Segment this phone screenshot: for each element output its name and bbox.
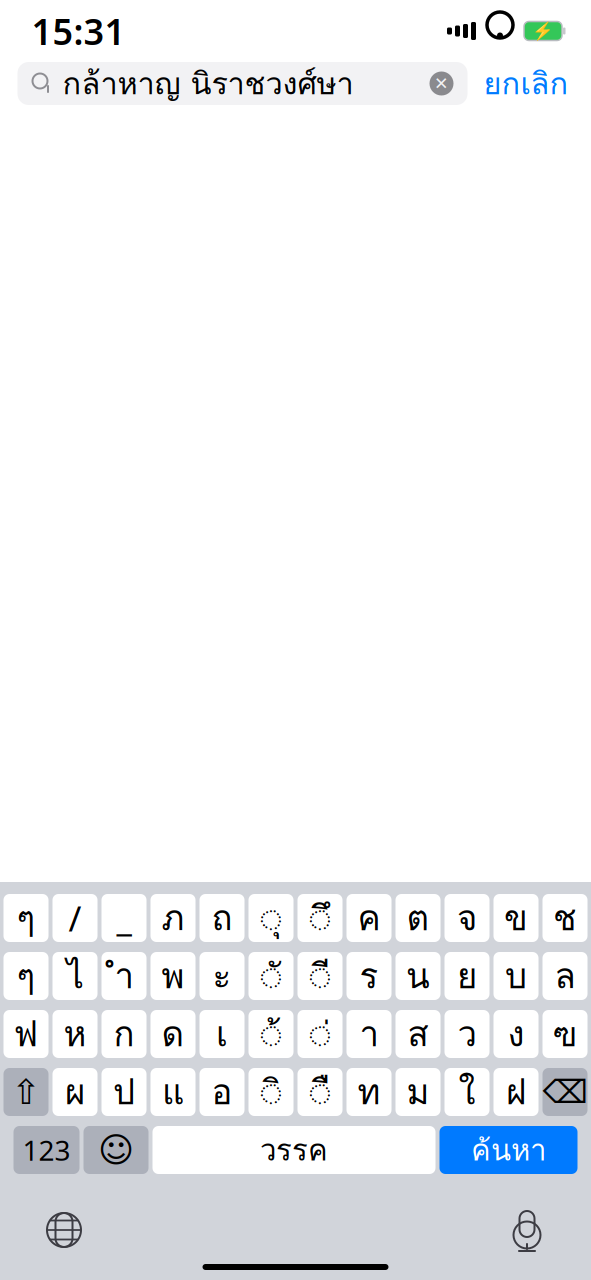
button[interactable]: ร	[346, 952, 391, 1000]
staticText: ☺	[98, 1130, 134, 1170]
staticText: ค้นหา	[471, 1127, 546, 1173]
button[interactable]: แ	[150, 1068, 195, 1116]
button[interactable]: ำ	[101, 952, 146, 1000]
staticText: ส	[407, 1007, 428, 1061]
button[interactable]: 123	[13, 1126, 79, 1174]
button[interactable]: ล	[542, 952, 587, 1000]
button[interactable]: วรรค	[152, 1126, 435, 1174]
button[interactable]: ต	[395, 894, 440, 942]
staticText: ค	[357, 891, 380, 945]
button[interactable]: ฃ	[542, 1010, 587, 1058]
staticText: ยกเลิก	[483, 60, 568, 107]
button[interactable]: กล้าหาญ นิราชวงศ์ษา	[17, 62, 467, 105]
staticText: ม	[406, 1065, 429, 1119]
staticText: ต	[406, 891, 429, 945]
staticText: ร	[359, 949, 378, 1003]
button[interactable]: ภ	[150, 894, 195, 942]
button[interactable]: ข	[493, 894, 538, 942]
staticText: ⚡	[532, 21, 554, 41]
button[interactable]: ท	[346, 1068, 391, 1116]
staticText: ด	[161, 1007, 184, 1061]
staticText: ฃ	[552, 1007, 577, 1061]
button[interactable]: ่	[297, 1010, 342, 1058]
button[interactable]: ย	[444, 952, 489, 1000]
button[interactable]: ี	[297, 952, 342, 1000]
button[interactable]: ด	[150, 1010, 195, 1058]
button[interactable]: ก	[101, 1010, 146, 1058]
button[interactable]: /	[52, 894, 97, 942]
staticText: น	[406, 949, 430, 1003]
button[interactable]: ใ	[444, 1068, 489, 1116]
button[interactable]: ะ	[199, 952, 244, 1000]
button[interactable]: Emoji keyboard	[83, 1126, 148, 1174]
button[interactable]: ค	[346, 894, 391, 942]
staticText: ฝ	[506, 1065, 526, 1119]
staticText: ภ	[161, 891, 184, 945]
button[interactable]: ส	[395, 1010, 440, 1058]
button[interactable]: ผ	[52, 1068, 97, 1116]
staticText: ช	[553, 891, 577, 945]
staticText: ื	[309, 1065, 330, 1119]
button[interactable]: _	[101, 894, 146, 942]
button[interactable]: ิ	[248, 1068, 293, 1116]
staticText: วรรค	[260, 1127, 328, 1173]
button[interactable]: ุ	[248, 894, 293, 942]
staticText: ผ	[65, 1065, 85, 1119]
staticText: ๆ	[16, 949, 35, 1003]
button[interactable]: Clear text	[426, 68, 456, 98]
staticText: ี	[309, 949, 330, 1003]
staticText: _	[116, 895, 131, 941]
staticText: ⌫	[542, 1074, 587, 1110]
staticText: อ	[211, 1065, 232, 1119]
staticText: ำ	[114, 949, 133, 1003]
staticText: ย	[457, 949, 477, 1003]
staticText: แ	[162, 1065, 184, 1119]
staticText: จ	[457, 891, 477, 945]
button[interactable]: ว	[444, 1010, 489, 1058]
button[interactable]: อ	[199, 1068, 244, 1116]
button[interactable]: Dictation	[499, 1202, 555, 1258]
button[interactable]: จ	[444, 894, 489, 942]
button[interactable]: ๆ	[3, 894, 48, 942]
button[interactable]: ป	[101, 1068, 146, 1116]
staticText: ่	[309, 1007, 330, 1061]
staticText: ุ	[260, 891, 281, 945]
button[interactable]: ฟ	[3, 1010, 48, 1058]
button[interactable]: Next keyboard	[36, 1202, 92, 1258]
button[interactable]: ื	[297, 1068, 342, 1116]
staticText: ้	[260, 1007, 281, 1061]
staticText: า	[359, 1007, 378, 1061]
button[interactable]: น	[395, 952, 440, 1000]
button[interactable]: า	[346, 1010, 391, 1058]
button[interactable]: ช	[542, 894, 587, 942]
button[interactable]: บ	[493, 952, 538, 1000]
staticText: บ	[505, 949, 527, 1003]
button[interactable]: ฝ	[493, 1068, 538, 1116]
staticText: ห	[63, 1007, 86, 1061]
staticText: ฟ	[13, 1007, 38, 1061]
button[interactable]: ั	[248, 952, 293, 1000]
button[interactable]: ห	[52, 1010, 97, 1058]
staticText: ก	[113, 1007, 134, 1061]
staticText: ✕	[434, 74, 449, 93]
button[interactable]: ค้นหา	[439, 1126, 577, 1174]
button[interactable]: ้	[248, 1010, 293, 1058]
staticText: ⇧	[11, 1072, 40, 1112]
button[interactable]: ถ	[199, 894, 244, 942]
button[interactable]: ไ	[52, 952, 97, 1000]
staticText: 15:31	[31, 7, 125, 55]
button[interactable]: ๆ	[3, 952, 48, 1000]
button[interactable]: พ	[150, 952, 195, 1000]
staticText: ข	[504, 891, 528, 945]
staticText: ั	[260, 949, 281, 1003]
button[interactable]: ม	[395, 1068, 440, 1116]
staticText: ท	[357, 1065, 380, 1119]
button[interactable]: เ	[199, 1010, 244, 1058]
button[interactable]: Shift	[3, 1068, 48, 1116]
button[interactable]: Delete	[542, 1068, 587, 1116]
button[interactable]: ยกเลิก	[473, 62, 578, 105]
button[interactable]: ึ	[297, 894, 342, 942]
staticText: ะ	[212, 949, 231, 1003]
staticText: กล้าหาญ นิราชวงศ์ษา	[62, 60, 353, 107]
button[interactable]: ง	[493, 1010, 538, 1058]
